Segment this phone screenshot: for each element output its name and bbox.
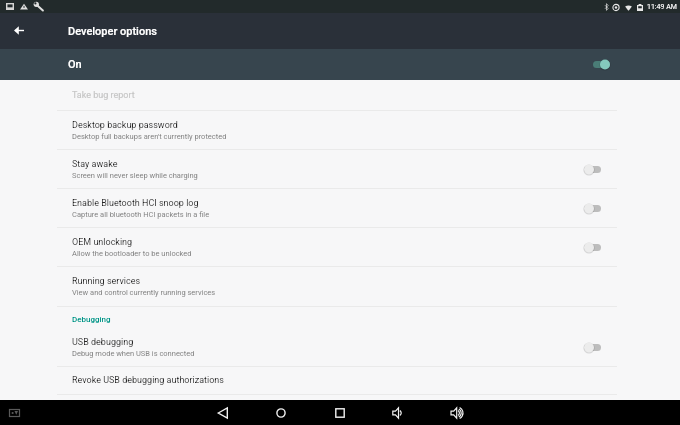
staticText: Stay awake <box>72 159 118 170</box>
staticText: Desktop full backups aren't currently pr… <box>72 132 227 141</box>
staticText: Running services <box>72 276 141 287</box>
staticText: Debug mode when USB is connected <box>72 349 195 358</box>
staticText: Enable Bluetooth HCI snoop log <box>72 198 199 209</box>
button[interactable]: Toggle Stay awake <box>600 164 617 175</box>
button[interactable]: Enable Bluetooth HCI snoop log <box>0 189 680 227</box>
button[interactable]: Toggle Enable Bluetooth HCI snoop log <box>600 203 617 214</box>
staticText: Revoke USB debugging authorizations <box>72 375 224 386</box>
button[interactable]: Desktop backup password <box>0 111 680 149</box>
button[interactable]: Screenshot <box>4 403 24 423</box>
button[interactable]: Volume down <box>387 402 409 424</box>
button[interactable]: Recent apps <box>329 402 351 424</box>
staticText: Desktop backup password <box>72 120 178 131</box>
staticText: Debugging <box>72 315 111 324</box>
staticText: Allow the bootloader to be unlocked <box>72 249 192 258</box>
button[interactable]: Toggle USB debugging <box>600 342 617 353</box>
button[interactable]: Home <box>270 402 292 424</box>
staticText: USB debugging <box>72 337 134 348</box>
button[interactable]: USB debugging <box>0 328 680 366</box>
staticText: Screen will never sleep while charging <box>72 171 198 180</box>
other: Developer options enabled <box>593 59 610 70</box>
button[interactable]: Navigate up <box>7 19 31 43</box>
staticText: Take bug report <box>72 90 135 101</box>
button[interactable]: On <box>0 49 680 80</box>
button[interactable]: OEM unlocking <box>0 228 680 266</box>
staticText: Developer options <box>68 25 157 38</box>
button[interactable]: Toggle OEM unlocking <box>600 242 617 253</box>
button[interactable]: Take bug report <box>0 80 680 110</box>
button[interactable]: Stay awake <box>0 150 680 188</box>
button[interactable]: Volume up <box>446 402 468 424</box>
staticText: OEM unlocking <box>72 237 133 248</box>
button[interactable]: Running services <box>0 267 680 306</box>
staticText: Capture all bluetooth HCI packets in a f… <box>72 210 210 219</box>
staticText: On <box>68 58 82 71</box>
button[interactable]: Back <box>212 402 234 424</box>
staticText: 11:49 AM <box>647 3 677 11</box>
staticText: View and control currently running servi… <box>72 288 216 297</box>
button[interactable]: Revoke USB debugging authorizations <box>0 367 680 394</box>
